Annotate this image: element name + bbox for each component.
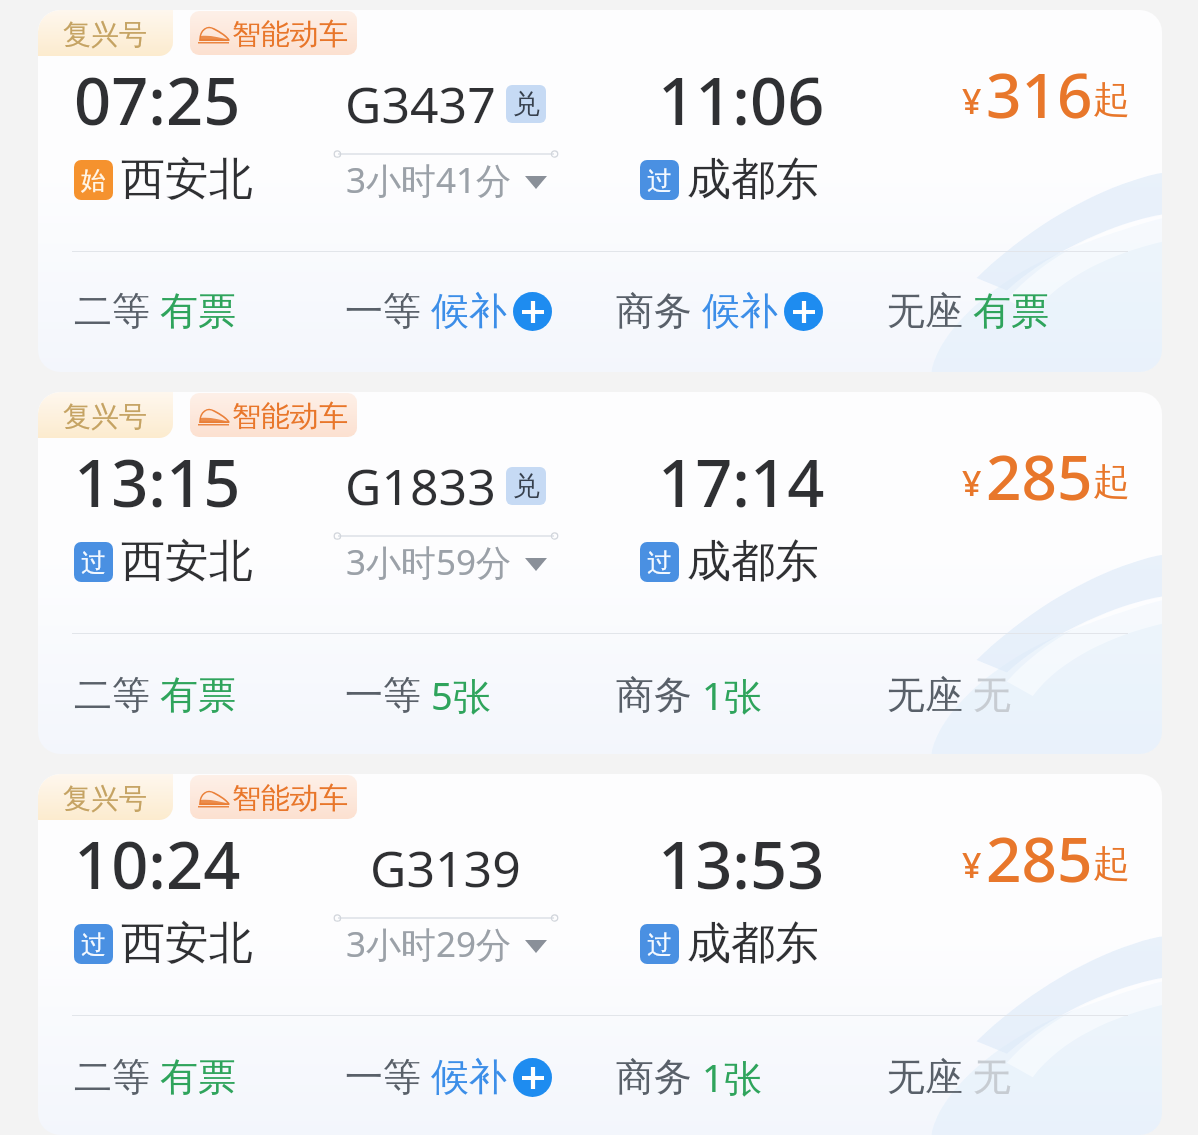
staticText: 1张: [702, 669, 762, 721]
staticText: 无座: [887, 671, 963, 719]
staticText: ¥: [962, 460, 982, 506]
staticText: 无: [973, 1053, 1011, 1101]
staticText: 1张: [702, 1051, 762, 1103]
staticText: 始: [81, 165, 106, 196]
staticText: 成都东: [687, 152, 819, 207]
button[interactable]: 无座: [887, 287, 1117, 335]
staticText: 西安北: [121, 152, 253, 207]
button[interactable]: 商务: [616, 287, 887, 335]
staticText: 无座: [887, 287, 963, 335]
button[interactable]: 无座: [887, 1053, 1117, 1101]
button[interactable]: 商务: [616, 669, 887, 721]
staticText: 一等: [345, 287, 421, 335]
staticText: 285: [986, 816, 1093, 900]
staticText: G3437: [345, 70, 496, 138]
staticText: 285: [986, 434, 1093, 518]
staticText: 11:06: [658, 56, 825, 145]
staticText: 17:14: [658, 438, 825, 527]
staticText: 商务: [616, 1053, 692, 1101]
staticText: 3小时59分: [346, 538, 512, 586]
other: 候补: [784, 292, 823, 331]
button[interactable]: 一等: [345, 669, 616, 721]
staticText: 有票: [160, 671, 236, 719]
staticText: 13:15: [74, 438, 241, 527]
staticText: 兑: [513, 87, 540, 121]
button[interactable]: Show stops: [346, 156, 547, 204]
staticText: 兑: [513, 469, 540, 503]
button[interactable]: 商务: [616, 1051, 887, 1103]
button[interactable]: 复兴号: [38, 774, 1162, 1135]
button[interactable]: 一等: [345, 287, 616, 335]
staticText: 过: [647, 929, 672, 960]
staticText: 一等: [345, 1053, 421, 1101]
staticText: 起: [1093, 76, 1130, 123]
staticText: 商务: [616, 671, 692, 719]
staticText: 3小时41分: [346, 156, 512, 204]
staticText: 商务: [616, 287, 692, 335]
button[interactable]: Show stops: [346, 920, 547, 968]
staticText: 二等: [74, 1053, 150, 1101]
staticText: G1833: [345, 452, 496, 520]
staticText: ¥: [962, 842, 982, 888]
staticText: G3139: [370, 834, 521, 902]
other: 候补: [513, 292, 552, 331]
staticText: 过: [647, 547, 672, 578]
button[interactable]: 无座: [887, 671, 1117, 719]
staticText: 智能动车: [232, 16, 348, 53]
staticText: 候补: [431, 287, 507, 335]
staticText: 候补: [431, 1053, 507, 1101]
button[interactable]: Show stops: [346, 538, 547, 586]
button[interactable]: 二等: [74, 287, 345, 335]
staticText: 起: [1093, 840, 1130, 887]
staticText: 起: [1093, 458, 1130, 505]
staticText: 过: [81, 929, 106, 960]
staticText: 复兴号: [63, 17, 147, 52]
staticText: 无座: [887, 1053, 963, 1101]
button[interactable]: 一等: [345, 1053, 616, 1101]
staticText: 西安北: [121, 534, 253, 589]
staticText: 复兴号: [63, 781, 147, 816]
staticText: 10:24: [74, 820, 241, 909]
button[interactable]: 复兴号: [38, 10, 1162, 372]
staticText: 316: [986, 52, 1093, 136]
staticText: 候补: [702, 287, 778, 335]
staticText: 有票: [160, 287, 236, 335]
staticText: 成都东: [687, 534, 819, 589]
staticText: 过: [81, 547, 106, 578]
staticText: 成都东: [687, 916, 819, 971]
staticText: ¥: [962, 78, 982, 124]
staticText: 07:25: [74, 56, 241, 145]
staticText: 二等: [74, 671, 150, 719]
button[interactable]: 二等: [74, 671, 345, 719]
staticText: 5张: [431, 669, 491, 721]
staticText: 无: [973, 671, 1011, 719]
staticText: 13:53: [658, 820, 825, 909]
staticText: 智能动车: [232, 398, 348, 435]
staticText: 有票: [973, 287, 1049, 335]
staticText: 有票: [160, 1053, 236, 1101]
staticText: 复兴号: [63, 399, 147, 434]
button[interactable]: 二等: [74, 1053, 345, 1101]
staticText: 智能动车: [232, 780, 348, 817]
staticText: 过: [647, 165, 672, 196]
staticText: 西安北: [121, 916, 253, 971]
staticText: 二等: [74, 287, 150, 335]
button[interactable]: 复兴号: [38, 392, 1162, 754]
other: 候补: [513, 1058, 552, 1097]
staticText: 3小时29分: [346, 920, 512, 968]
staticText: 一等: [345, 671, 421, 719]
